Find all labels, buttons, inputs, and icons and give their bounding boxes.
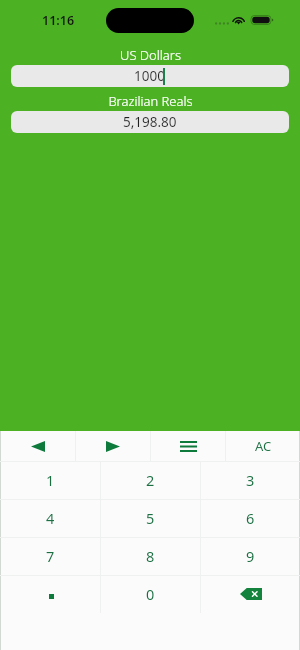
staticText: 1000 — [134, 67, 165, 85]
staticText: US Dollars — [120, 46, 181, 64]
staticText: AC — [255, 437, 272, 455]
button[interactable]: Next — [76, 431, 150, 461]
button[interactable]: 6 — [201, 500, 300, 537]
button[interactable] — [0, 576, 100, 613]
button[interactable]: 1000 — [11, 65, 289, 87]
button[interactable]: 5 — [101, 500, 200, 537]
button[interactable]: 7 — [0, 538, 100, 575]
staticText: 6 — [246, 508, 255, 528]
staticText: Brazilian Reals — [108, 92, 193, 110]
staticText: 8 — [146, 546, 155, 566]
button[interactable]: 3 — [201, 462, 300, 499]
staticText: 11:16 — [42, 12, 75, 29]
button[interactable]: 1 — [0, 462, 100, 499]
staticText: 4 — [46, 508, 55, 528]
button[interactable]: Previous — [0, 431, 75, 461]
button[interactable]: AC — [226, 431, 300, 461]
staticText: 5 — [146, 508, 155, 528]
button[interactable]: 5,198.80 — [11, 111, 289, 133]
staticText: 2 — [146, 470, 155, 490]
staticText: 5,198.80 — [123, 113, 177, 131]
button[interactable]: 2 — [101, 462, 200, 499]
staticText: 7 — [46, 546, 55, 566]
staticText: 9 — [246, 546, 255, 566]
staticText: 1 — [46, 470, 55, 490]
button[interactable]: Backspace — [201, 576, 300, 613]
button[interactable]: Menu — [151, 431, 225, 461]
staticText: 3 — [246, 470, 255, 490]
button[interactable]: 9 — [201, 538, 300, 575]
button[interactable]: 4 — [0, 500, 100, 537]
button[interactable]: 0 — [101, 576, 200, 613]
button[interactable]: 8 — [101, 538, 200, 575]
staticText: 0 — [146, 584, 155, 604]
